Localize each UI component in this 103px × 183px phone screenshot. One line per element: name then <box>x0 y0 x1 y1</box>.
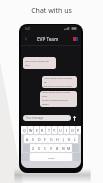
staticText: Chat with us <box>0 6 103 16</box>
button[interactable]: A <box>24 135 30 143</box>
button[interactable]: R <box>40 126 45 134</box>
button[interactable]: L <box>72 135 78 143</box>
staticText: T <box>48 128 50 133</box>
staticText: EVP Team <box>37 36 59 42</box>
button[interactable]: B <box>54 144 60 152</box>
button[interactable]: N <box>60 144 66 152</box>
staticText: N <box>62 146 65 151</box>
button[interactable]: X <box>36 144 42 152</box>
button[interactable]: V <box>48 144 54 152</box>
button[interactable]: I <box>64 126 69 134</box>
staticText: R <box>41 128 44 133</box>
button[interactable]: Hello! How can we help you? <box>23 57 56 69</box>
button[interactable]: Your message <box>23 115 71 121</box>
staticText: M <box>67 146 71 151</box>
staticText: X <box>38 146 41 151</box>
staticText: K <box>68 137 71 142</box>
staticText: L <box>74 137 76 142</box>
button[interactable]: W <box>28 126 33 134</box>
staticText: C <box>44 146 47 151</box>
staticText: G <box>50 137 53 142</box>
staticText: space <box>48 156 55 159</box>
staticText: V <box>50 146 53 151</box>
button[interactable]: C <box>42 144 48 152</box>
button[interactable]: Send <box>71 115 77 121</box>
staticText: B <box>56 146 59 151</box>
staticText: Q <box>23 128 26 133</box>
button[interactable]: Y <box>52 126 57 134</box>
button[interactable]: Q <box>21 126 27 134</box>
staticText: Y <box>53 128 56 133</box>
button[interactable]: O <box>70 126 75 134</box>
button[interactable]: Lorem ipsum dolor sit amet dolor ipsum u… <box>40 91 77 107</box>
button[interactable]: D <box>36 135 42 143</box>
staticText: Z <box>32 146 35 151</box>
staticText: S <box>32 137 34 142</box>
button[interactable]: U <box>58 126 63 134</box>
button[interactable]: K <box>66 135 72 143</box>
staticText: F <box>44 137 46 142</box>
staticText: Your message <box>26 116 44 120</box>
button[interactable]: M <box>66 144 72 152</box>
staticText: I <box>66 128 68 133</box>
staticText: U <box>59 128 62 133</box>
button[interactable]: Back <box>23 36 29 42</box>
staticText: E <box>36 128 38 133</box>
button[interactable]: space <box>30 153 72 161</box>
button[interactable]: G <box>48 135 54 143</box>
staticText: 9:41 <box>25 27 31 31</box>
button[interactable]: T <box>46 126 51 134</box>
staticText: O <box>71 128 74 133</box>
staticText: A <box>26 137 29 142</box>
staticText: D <box>38 137 41 142</box>
button[interactable]: E <box>34 126 39 134</box>
button[interactable]: F <box>42 135 48 143</box>
button[interactable]: P <box>76 126 81 134</box>
button[interactable]: J <box>60 135 66 143</box>
button[interactable]: Z <box>30 144 36 152</box>
button[interactable]: Flag <box>73 37 78 41</box>
staticText: H <box>56 137 59 142</box>
staticText: W <box>29 128 33 133</box>
staticText: Hello! How can we help you? <box>25 60 54 67</box>
staticText: Lorem ipsum dolor sit amet dolor ipsum u… <box>42 91 75 107</box>
button[interactable]: H <box>54 135 60 143</box>
staticText: P <box>77 128 80 133</box>
button[interactable]: S <box>30 135 36 143</box>
staticText: Lorem ipsum dolor sit amet do eiusmod co… <box>44 77 75 88</box>
button[interactable]: Lorem ipsum dolor sit amet do eiusmod co… <box>42 76 77 88</box>
staticText: J <box>63 137 64 142</box>
